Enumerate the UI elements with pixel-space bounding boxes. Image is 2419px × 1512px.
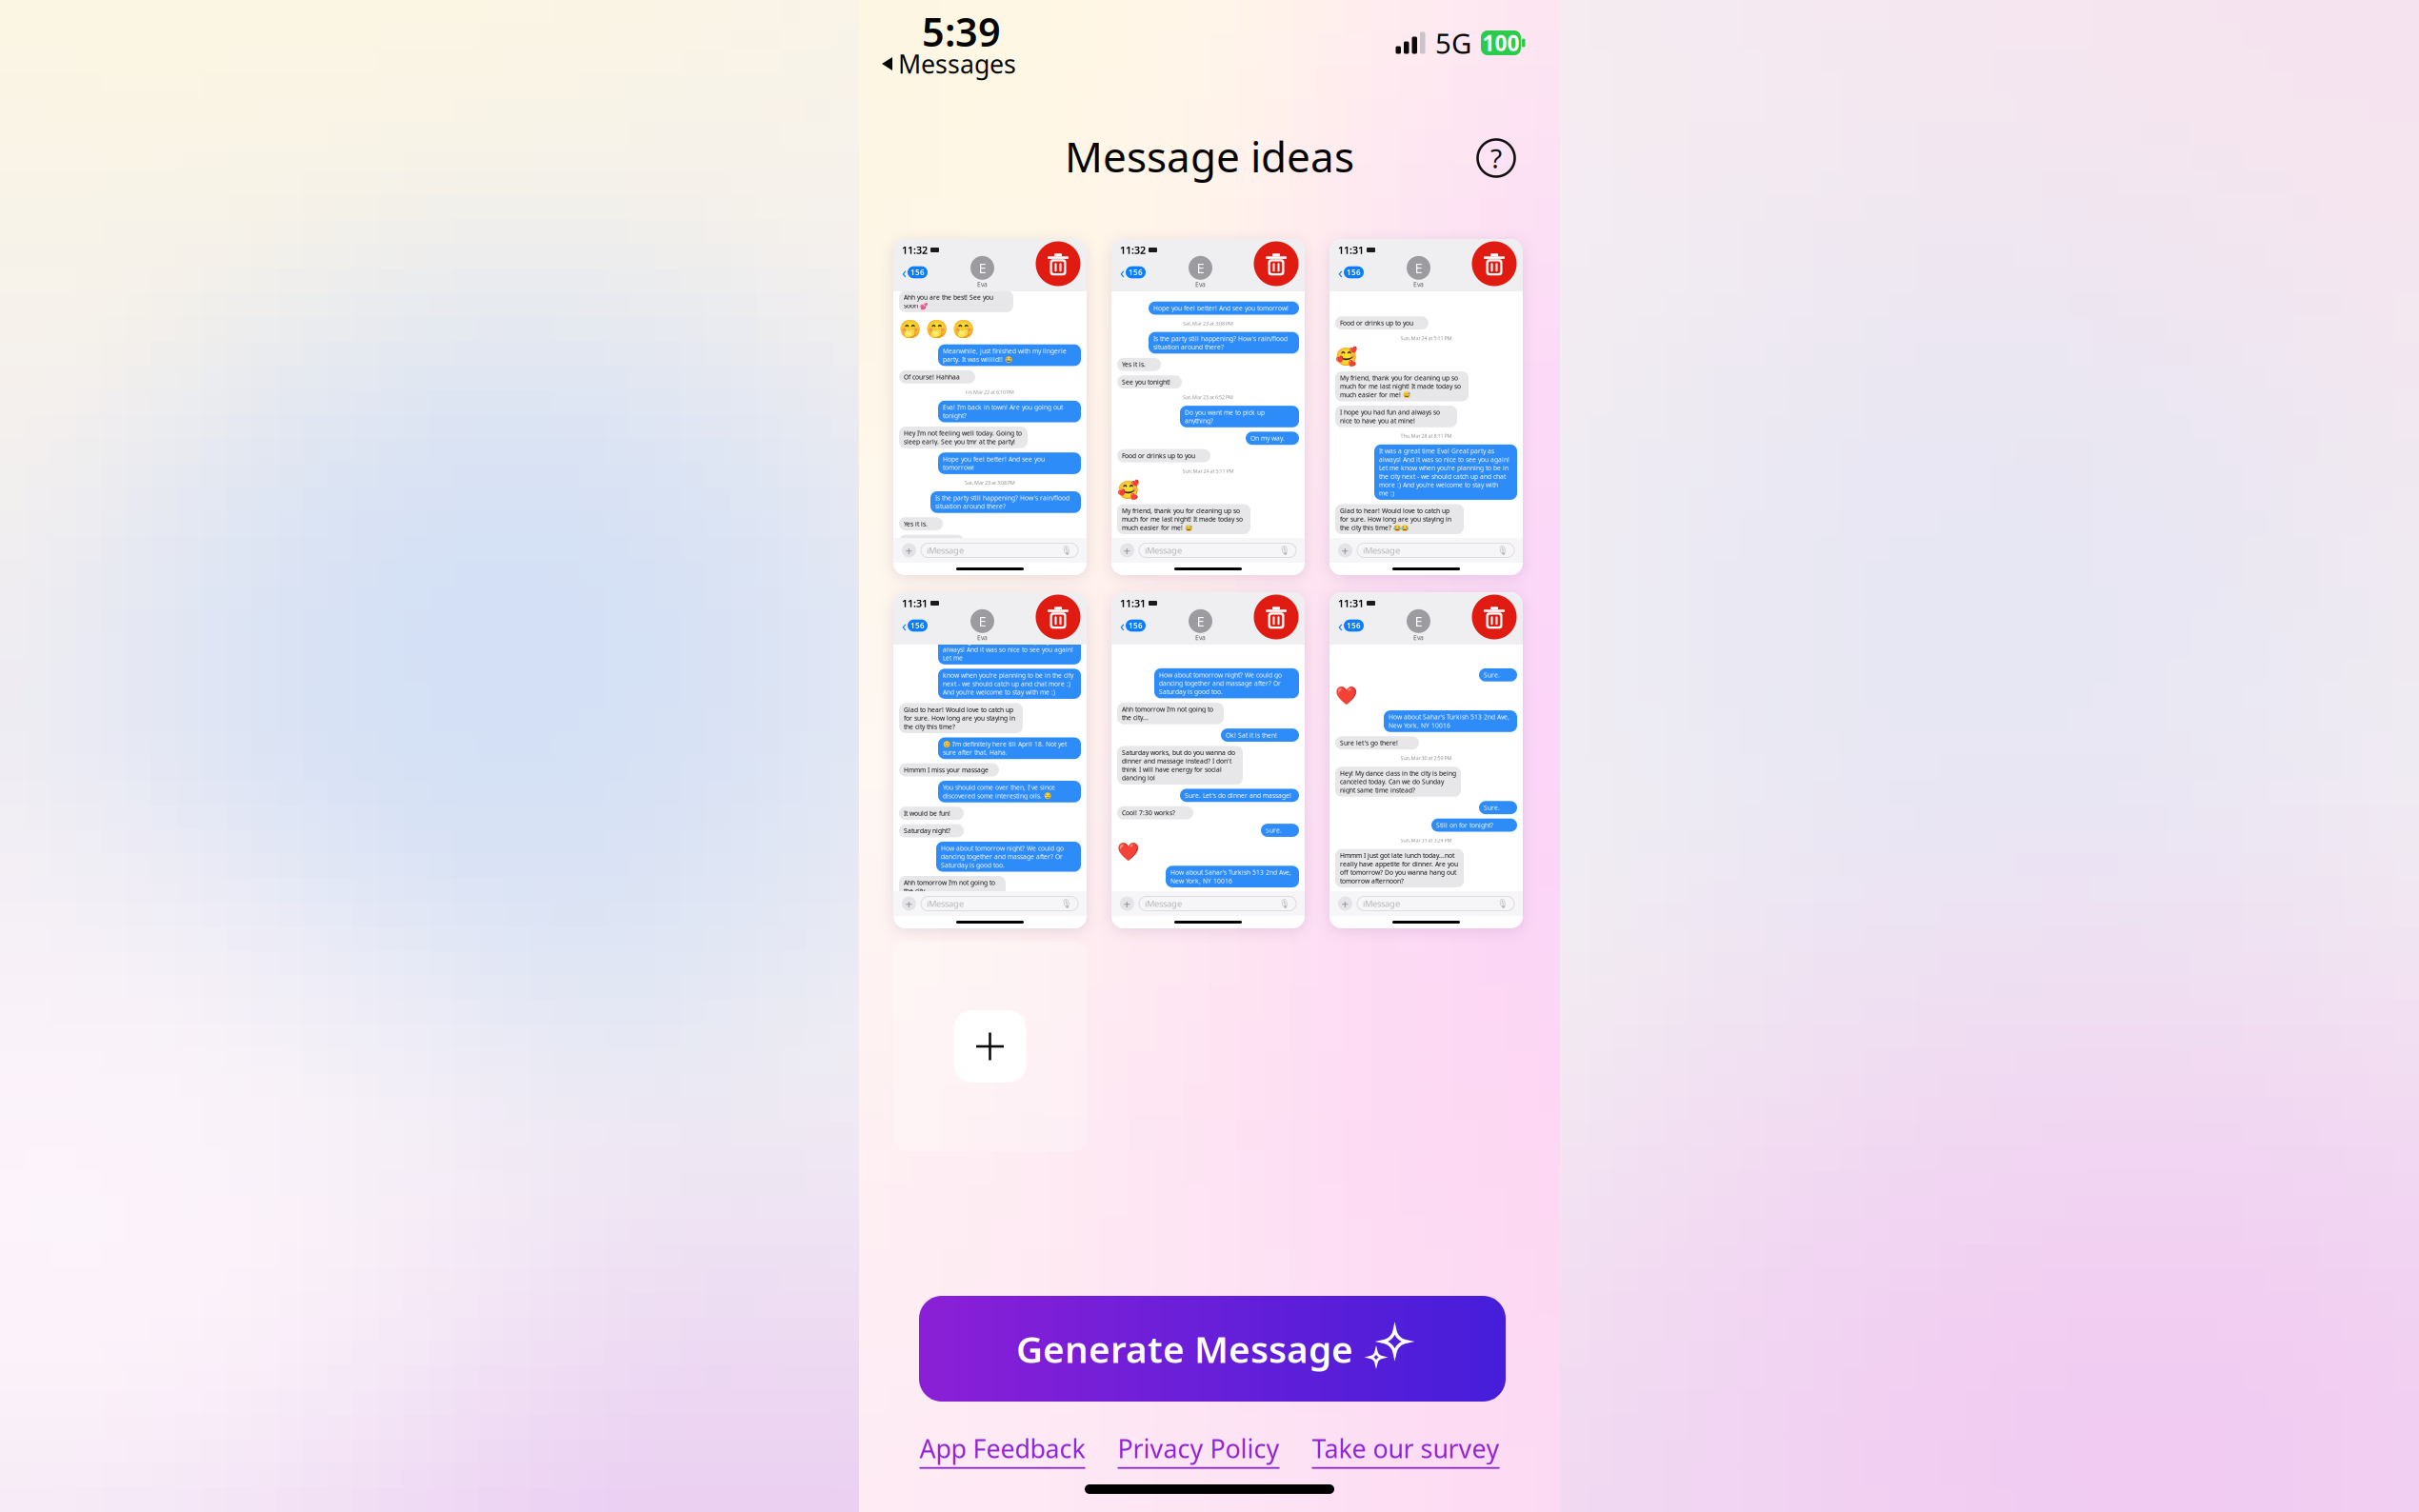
button[interactable]: Delete — [1033, 592, 1083, 642]
button[interactable]: Help — [1473, 135, 1519, 181]
staticText: Hope you feel better! And see you tomorr… — [1153, 304, 1289, 312]
staticText: Hope you feel better! And see you tomorr… — [943, 455, 1045, 472]
button[interactable]: App Feedback — [920, 1431, 1085, 1469]
staticText: 156 — [1347, 267, 1361, 277]
button[interactable]: Privacy Policy — [1118, 1431, 1279, 1469]
staticText: Hmmm I just got late lunch today...not r… — [1340, 851, 1458, 885]
staticText: ❤️ — [1117, 841, 1139, 861]
staticText: Hmmm I miss your massage — [904, 766, 989, 774]
staticText: iMessage — [1363, 898, 1400, 909]
staticText: Take our survey — [1312, 1431, 1499, 1465]
staticText: App Feedback — [920, 1431, 1085, 1465]
staticText: Ahh you are the best! See you soon 💕 — [904, 293, 993, 310]
button[interactable]: Delete — [1469, 592, 1519, 642]
staticText: 🎙 — [1061, 899, 1072, 909]
staticText: Sure. — [1266, 826, 1282, 835]
staticText: How about tomorrow night? We could go da… — [941, 844, 1064, 869]
staticText: Eva — [1195, 633, 1206, 642]
staticText: Hey I'm not feeling well today. Going to… — [904, 429, 1022, 446]
staticText: My friend, thank you for cleaning up so … — [1122, 506, 1243, 532]
staticText: Yes it is. — [904, 520, 928, 528]
staticText: Generate Message — [1016, 1324, 1353, 1373]
staticText: Yes it is. — [1122, 360, 1146, 369]
staticText: 🥰 — [1335, 347, 1357, 367]
staticText: iMessage — [1363, 544, 1400, 556]
staticText: Sun, Mar 30 at 2:59 PM — [1400, 755, 1452, 762]
staticText: 156 — [910, 621, 925, 631]
staticText: iMessage — [927, 544, 964, 556]
staticText: Sat, Mar 23 at 3:08 PM — [1183, 320, 1233, 327]
staticText: 🎙 — [1497, 899, 1509, 909]
staticText: How about tomorrow night? We could go da… — [1159, 671, 1282, 696]
staticText: iMessage — [1145, 544, 1182, 556]
staticText: 😊 I'm definitely here till April 18. Not… — [943, 740, 1067, 757]
button[interactable]: Message idea screenshot, 11:31 — [1329, 239, 1523, 575]
staticText: Eva! I'm back in town! Are you going out… — [943, 403, 1063, 420]
staticText: Ok! Sat it is then! — [1226, 731, 1277, 739]
button[interactable]: Message idea screenshot, 11:31 — [1111, 592, 1305, 928]
staticText: ? — [1490, 140, 1502, 176]
staticText: ‹ — [1338, 615, 1343, 636]
button[interactable]: Take our survey — [1312, 1431, 1499, 1469]
staticText: My friend, thank you for cleaning up so … — [1340, 374, 1461, 399]
button[interactable]: Delete — [1033, 239, 1083, 288]
staticText: 🎙 — [1279, 899, 1290, 909]
staticText: Cool! 7:30 works? — [1122, 809, 1175, 817]
staticText: ❤️ — [1335, 686, 1357, 706]
staticText: E — [979, 612, 986, 630]
staticText: How about Sahar's Turkish 513 2nd Ave, N… — [1389, 713, 1509, 730]
button[interactable]: Message idea screenshot, 11:31 — [1329, 592, 1523, 928]
staticText: ‹ — [902, 615, 907, 636]
staticText: It would be fun! — [904, 809, 950, 818]
button[interactable]: Add message idea — [893, 942, 1087, 1151]
staticText: 🎙 — [1497, 545, 1509, 555]
staticText: Hey! My dance class in the city is being… — [1340, 769, 1456, 794]
staticText: Sure. — [1484, 671, 1500, 679]
staticText: Fri, Mar 22 at 6:10 PM — [966, 389, 1014, 395]
staticText: Ahh tomorrow I'm not going to the city..… — [904, 878, 995, 895]
staticText: I hope you had fun and always so nice to… — [1340, 408, 1440, 425]
staticText: + — [1341, 542, 1349, 559]
staticText: 156 — [1129, 621, 1143, 631]
staticText: Eva — [977, 633, 988, 642]
button[interactable]: Message idea screenshot, 11:31 — [893, 592, 1087, 928]
staticText: Sure. — [1484, 803, 1500, 812]
staticText: ‹ — [902, 262, 907, 282]
staticText: Eva — [977, 280, 988, 289]
staticText: + — [1341, 895, 1349, 912]
staticText: Glad to hear! Would love to catch up for… — [904, 705, 1015, 731]
staticText: 🥰 — [1117, 479, 1139, 500]
button[interactable]: Message idea screenshot, 11:32 — [893, 239, 1087, 575]
staticText: ‹ — [1338, 262, 1343, 282]
staticText: Eva — [1413, 633, 1424, 642]
staticText: Eva — [1413, 280, 1424, 289]
staticText: Eva — [1195, 280, 1206, 289]
staticText: ‹ — [1120, 615, 1125, 636]
staticText: E — [979, 259, 986, 277]
staticText: 11:31 — [1338, 243, 1364, 257]
staticText: + — [905, 542, 913, 559]
staticText: 5:39 — [922, 5, 1001, 58]
staticText: E — [1197, 612, 1204, 630]
button[interactable]: Delete — [1251, 239, 1301, 288]
staticText: It was a great time Eva! Great party as … — [943, 637, 1073, 662]
button[interactable]: Delete — [1469, 239, 1519, 288]
staticText: + — [1123, 895, 1131, 912]
staticText: 🎙 — [1061, 545, 1072, 555]
staticText: See you tonight! — [904, 537, 952, 546]
staticText: Do you want me to pick up anything? — [1185, 408, 1265, 425]
button[interactable]: Delete — [1251, 592, 1301, 642]
button[interactable]: Generate Message — [919, 1296, 1506, 1402]
staticText: Sure. Let's do dinner and massage! — [1185, 791, 1291, 800]
staticText: ‹ — [1120, 262, 1125, 282]
staticText: On my way. — [1250, 434, 1285, 442]
staticText: See you tonight! — [1122, 378, 1170, 386]
staticText: 156 — [1347, 621, 1361, 631]
staticText: How about Sahar's Turkish 513 2nd Ave, N… — [1170, 868, 1291, 885]
staticText: Food or drinks up to you — [1340, 319, 1413, 327]
button[interactable]: Message idea screenshot, 11:32 — [1111, 239, 1305, 575]
staticText: 11:32 — [1120, 243, 1146, 257]
staticText: Still on for tonight? — [1436, 821, 1493, 829]
staticText: Sure let's go there! — [1340, 739, 1398, 747]
staticText: Thu, Mar 28 at 8:11 PM — [1400, 432, 1452, 439]
